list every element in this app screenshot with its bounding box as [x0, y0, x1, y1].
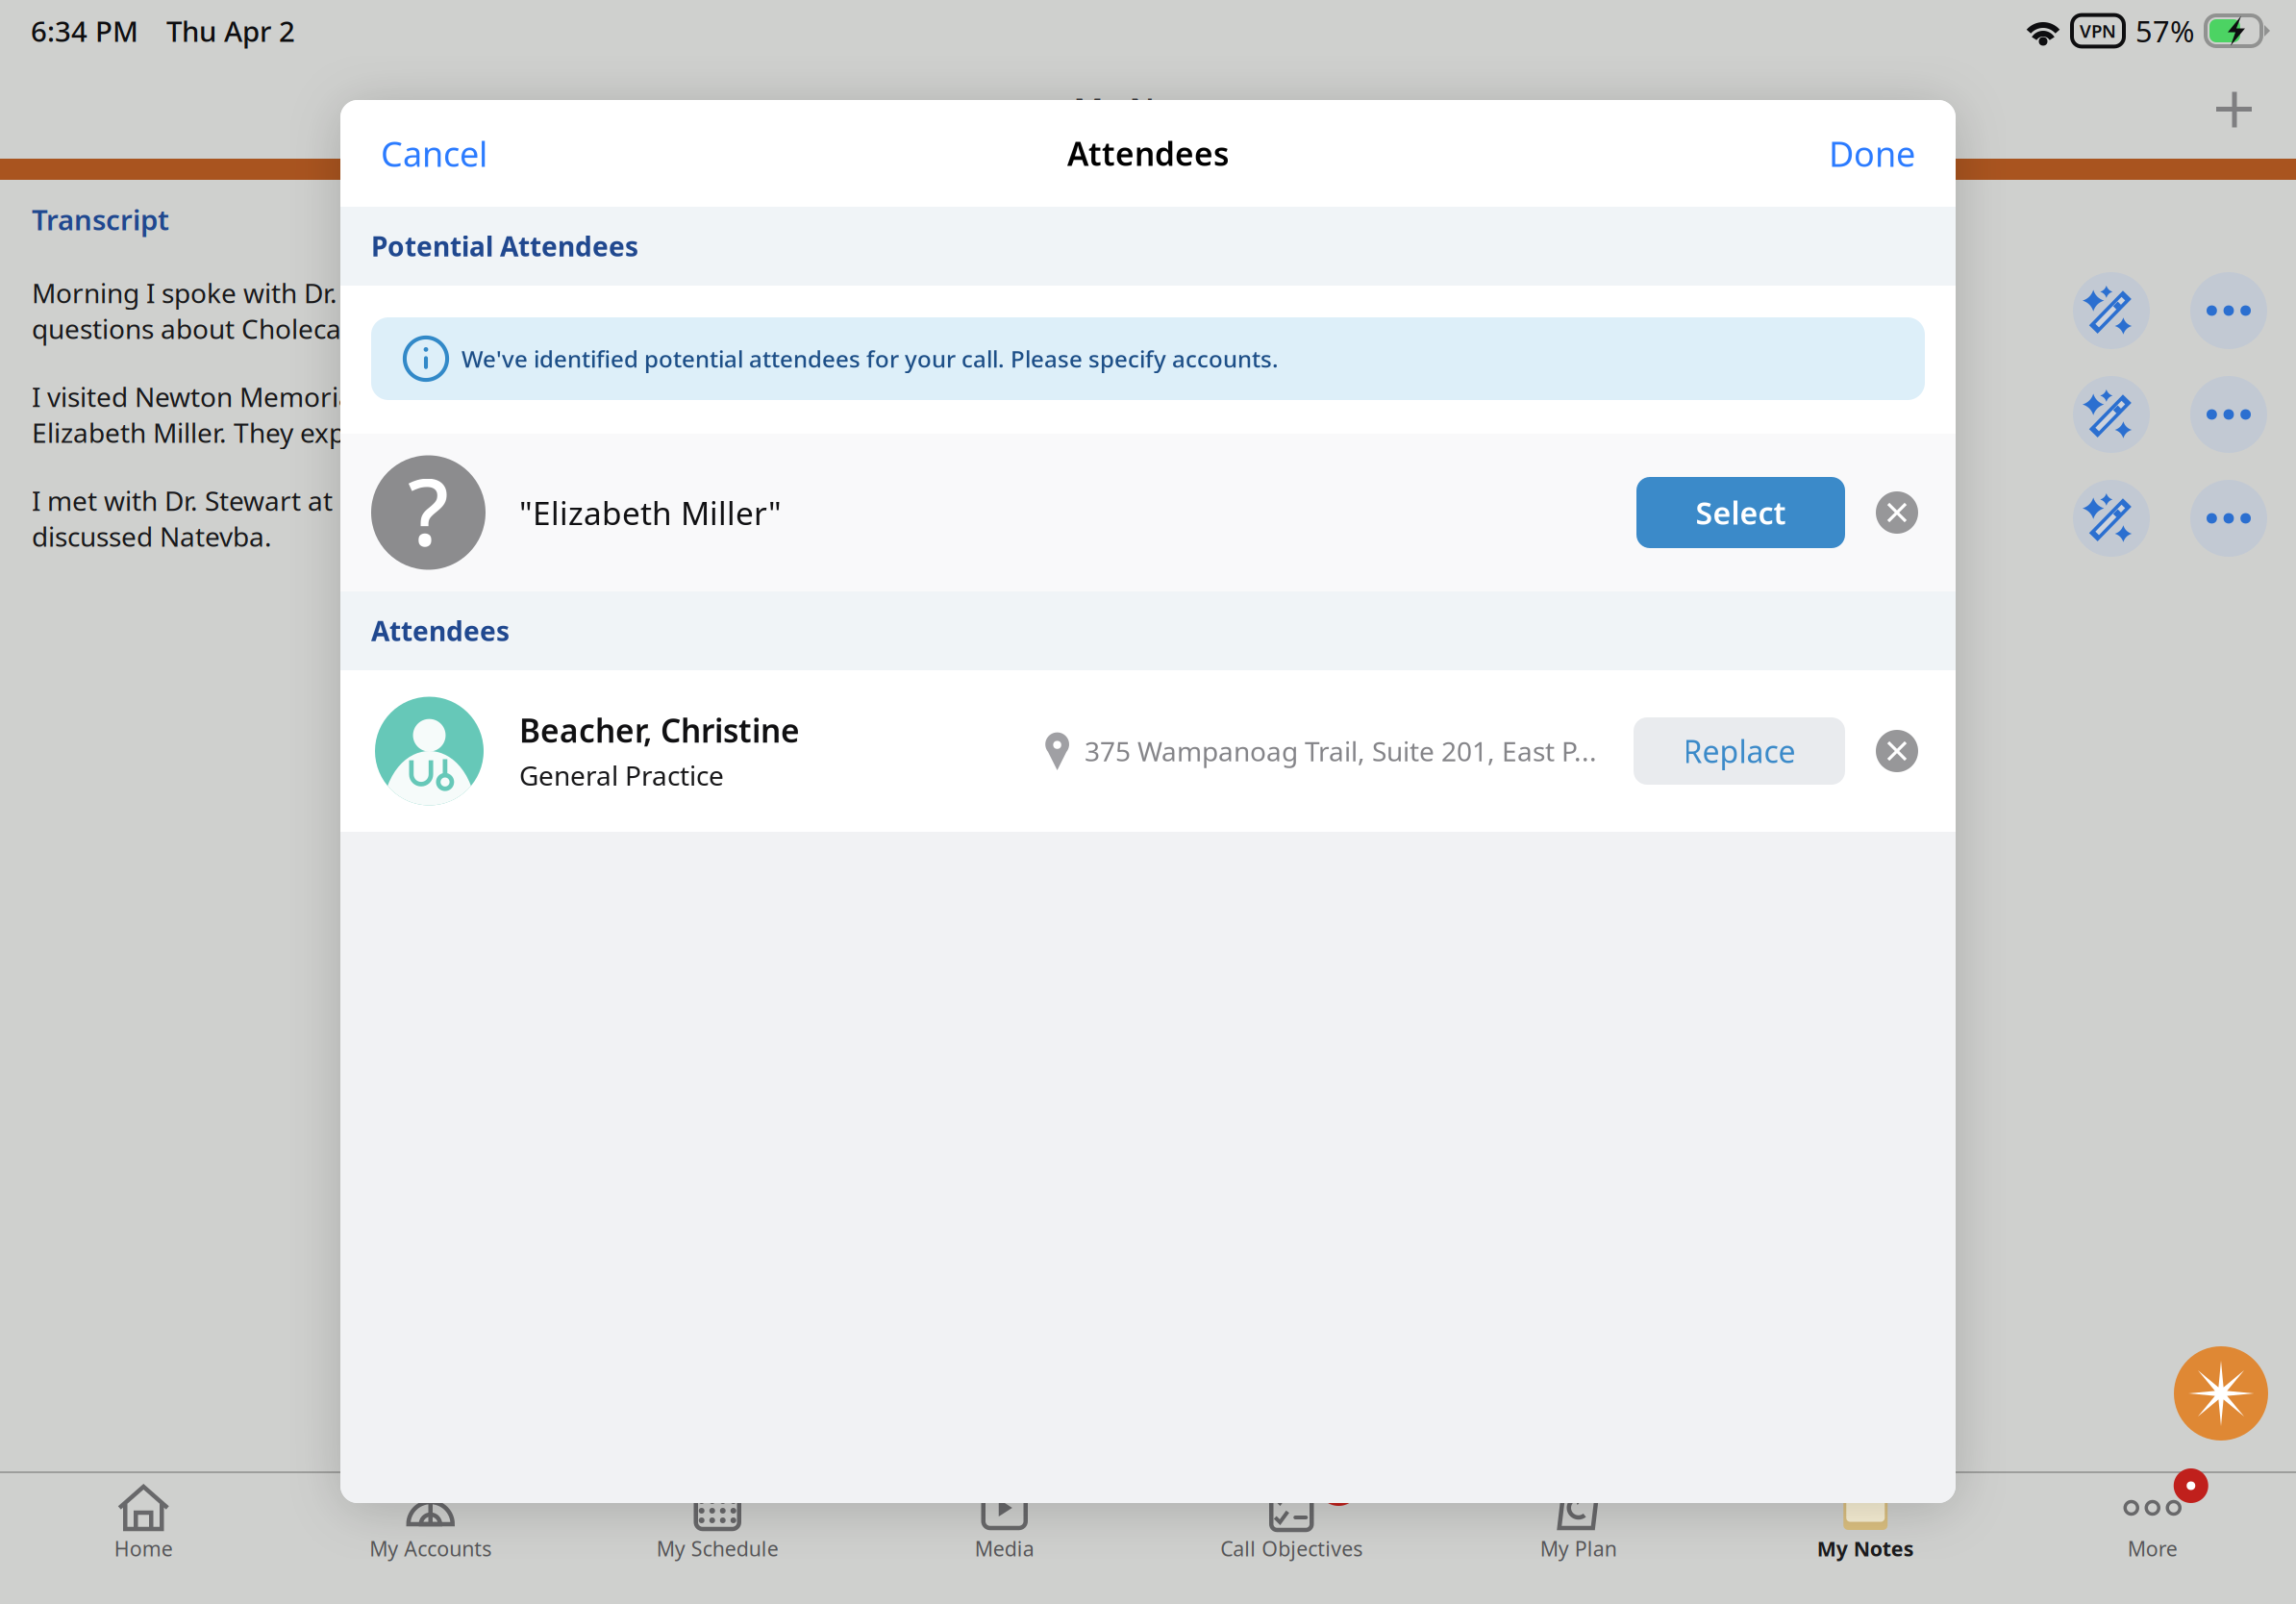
button[interactable]: Select	[1636, 477, 1845, 548]
button[interactable]: My Notes	[1722, 1473, 2009, 1604]
staticText: My Schedule	[656, 1535, 779, 1562]
button[interactable]: Assistant	[2167, 1340, 2275, 1447]
button[interactable]: Call Objectives	[1148, 1473, 1435, 1604]
button[interactable]: AI assist	[2073, 376, 2150, 453]
button[interactable]: My Schedule	[574, 1473, 861, 1604]
staticText: We've identified potential attendees for…	[462, 343, 1279, 374]
staticText: Potential Attendees	[371, 228, 638, 264]
button[interactable]: Cancel	[356, 111, 512, 196]
staticText: "Elizabeth Miller"	[519, 491, 782, 534]
staticText: ?	[408, 449, 449, 572]
button[interactable]: More options	[2190, 480, 2267, 557]
staticText: discussed Natevba.	[32, 518, 272, 554]
button[interactable]: Remove Beacher, Christine	[1876, 730, 1918, 772]
staticText: VPN	[2080, 19, 2116, 43]
staticText: Morning I spoke with Dr. Alan Stewart an…	[32, 275, 754, 311]
staticText: 57%	[2135, 11, 2194, 50]
staticText: My Notes	[1073, 89, 1223, 131]
button[interactable]: More	[2009, 1473, 2296, 1604]
staticText: My Accounts	[369, 1535, 492, 1562]
staticText: General Practice	[519, 757, 724, 793]
staticText: Attendees	[371, 613, 510, 649]
staticText: Elizabeth Miller. They expressed strong …	[32, 414, 649, 450]
staticText: Replace	[1683, 731, 1796, 772]
button[interactable]: My Plan	[1435, 1473, 1722, 1604]
button[interactable]: Media	[861, 1473, 1148, 1604]
button[interactable]: My Accounts	[287, 1473, 574, 1604]
button[interactable]: AI assist	[2073, 272, 2150, 349]
staticText: I visited Newton Memorial Hospital and m…	[32, 379, 684, 414]
button[interactable]: Remove Elizabeth Miller	[1876, 491, 1918, 534]
staticText: Select	[1696, 492, 1786, 533]
button[interactable]: Replace	[1634, 717, 1845, 785]
button[interactable]: More options	[2190, 376, 2267, 453]
staticText: More	[2128, 1535, 2178, 1562]
staticText: My Plan	[1540, 1535, 1617, 1562]
staticText: Done	[1829, 130, 1915, 176]
staticText: Attendees	[1067, 132, 1229, 175]
staticText: 375 Wampanoag Trail, Suite 201, East P..…	[1085, 733, 1597, 769]
staticText: Cancel	[381, 130, 487, 176]
staticText: Beacher, Christine	[519, 709, 800, 752]
button[interactable]: More options	[2190, 272, 2267, 349]
staticText: My Notes	[1817, 1535, 1914, 1562]
staticText: Thu Apr 2	[166, 12, 295, 50]
button[interactable]: Home	[0, 1473, 287, 1604]
button[interactable]: Add note	[2197, 73, 2272, 148]
staticText: 6:34 PM	[31, 12, 138, 50]
staticText: Transcript	[32, 200, 169, 238]
staticText: questions about Cholecap.	[32, 311, 365, 346]
button[interactable]: AI assist	[2073, 480, 2150, 557]
button[interactable]: Done	[1804, 111, 1940, 196]
staticText: I met with Dr. Stewart at Newton Memoria…	[32, 483, 774, 518]
staticText: Home	[114, 1535, 173, 1562]
staticText: Media	[975, 1535, 1034, 1562]
staticText: Call Objectives	[1220, 1535, 1363, 1562]
